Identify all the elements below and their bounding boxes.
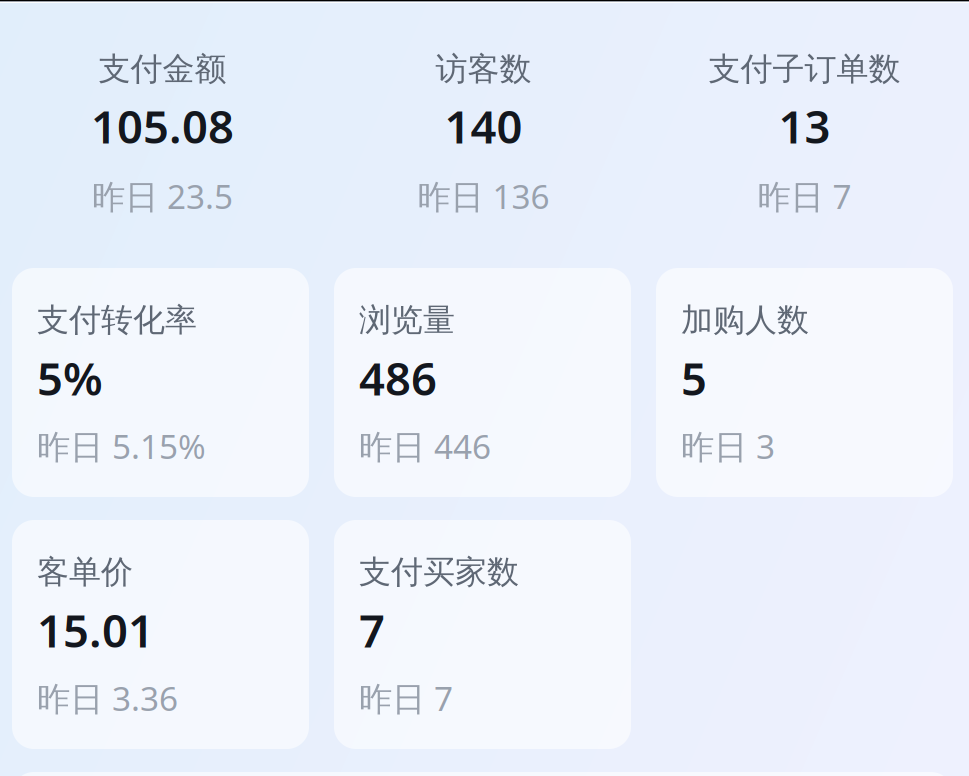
- staticText: 昨日 5.15%: [37, 424, 206, 468]
- staticText: 支付转化率: [37, 300, 197, 340]
- staticText: 昨日 3: [681, 424, 775, 468]
- staticText: 5%: [37, 348, 103, 408]
- button[interactable]: 支付买家数: [334, 520, 631, 749]
- staticText: 支付子订单数: [708, 49, 900, 89]
- staticText: 105.08: [91, 96, 234, 156]
- button[interactable]: 支付金额: [2, 52, 323, 213]
- button[interactable]: 支付子订单数: [644, 52, 965, 213]
- staticText: 加购人数: [681, 300, 809, 340]
- button[interactable]: 加购人数: [656, 268, 953, 497]
- staticText: 昨日 23.5: [92, 174, 233, 218]
- button[interactable]: 支付转化率: [12, 268, 309, 497]
- staticText: 昨日 3.36: [37, 676, 178, 720]
- staticText: 140: [444, 96, 522, 156]
- staticText: 486: [359, 348, 437, 408]
- button[interactable]: 访客数: [323, 52, 644, 213]
- staticText: 5: [681, 348, 707, 408]
- staticText: 昨日 7: [757, 174, 851, 218]
- staticText: 支付买家数: [359, 552, 519, 592]
- staticText: 13: [778, 96, 830, 156]
- staticText: 浏览量: [359, 300, 455, 340]
- staticText: 7: [359, 600, 385, 660]
- button[interactable]: 客单价: [12, 520, 309, 749]
- staticText: 客单价: [37, 552, 133, 592]
- staticText: 支付金额: [98, 49, 226, 89]
- staticText: 昨日 446: [359, 424, 491, 468]
- staticText: 15.01: [37, 600, 154, 660]
- staticText: 昨日 7: [359, 676, 453, 720]
- staticText: 昨日 136: [417, 174, 549, 218]
- button[interactable]: 浏览量: [334, 268, 631, 497]
- staticText: 访客数: [435, 49, 531, 89]
